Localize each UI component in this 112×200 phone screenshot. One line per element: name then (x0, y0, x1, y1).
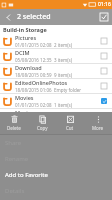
button[interactable]: Music (0, 109, 112, 123)
button[interactable]: Select all (96, 9, 112, 25)
button[interactable]: Back (0, 9, 16, 25)
button[interactable]: Cut (56, 112, 84, 134)
staticText: Delete (7, 125, 21, 131)
staticText: 01/01/2015 02:08 1 item(s) (15, 102, 73, 108)
staticText: Details (5, 187, 25, 195)
staticText: Build-in Storage (3, 26, 47, 33)
staticText: Movies (15, 94, 34, 101)
staticText: 2 selected (17, 12, 51, 22)
staticText: 18/08/2015 01:06 Empty folder (15, 87, 82, 93)
staticText: Cut (66, 125, 74, 131)
button[interactable]: DCIM (0, 49, 112, 63)
staticText: 05/08/2016 12:35 3 item(s) (15, 57, 73, 63)
button[interactable]: Copy (28, 112, 56, 134)
button[interactable]: Not selected (99, 81, 109, 91)
staticText: More (92, 125, 104, 131)
staticText: EditedOnlinePhotos (15, 79, 68, 86)
staticText: 01/01/2015 02:08 1 item(s) (15, 117, 73, 123)
button[interactable]: Movies (0, 94, 112, 108)
button[interactable]: Pictures (0, 34, 112, 48)
staticText: DCIM (15, 49, 30, 56)
staticText: Pictures (15, 34, 37, 41)
button[interactable]: Not selected (99, 51, 109, 61)
staticText: Add to Favorite (5, 171, 48, 179)
button[interactable]: Download (0, 64, 112, 78)
staticText: Music (15, 109, 31, 116)
button[interactable]: Add to Favorite (0, 167, 112, 183)
button[interactable]: Selected (99, 96, 109, 106)
button[interactable]: Not selected (99, 111, 109, 121)
staticText: 01/01/2015 02:08 2 item(s) (15, 42, 73, 48)
button[interactable]: Not selected (99, 66, 109, 76)
staticText: Rename (5, 155, 29, 163)
staticText: Download (15, 64, 42, 71)
button[interactable]: Delete (0, 112, 28, 134)
staticText: Copy (37, 125, 48, 131)
button[interactable]: EditedOnlinePhotos (0, 79, 112, 93)
button[interactable]: Not selected (99, 36, 109, 46)
button[interactable]: More (84, 112, 112, 134)
staticText: 01:16 (98, 1, 111, 8)
staticText: 18/08/2015 00:59 9 item(s) (15, 72, 73, 78)
